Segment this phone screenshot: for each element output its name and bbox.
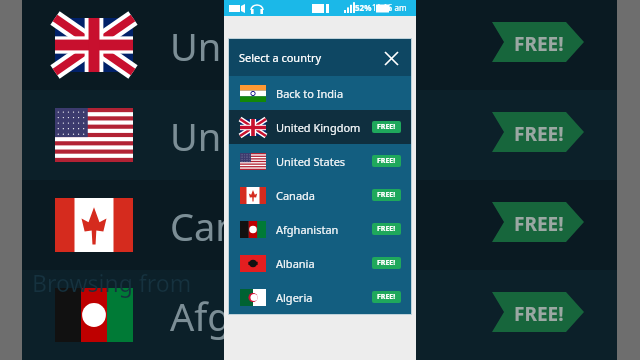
staticText: FREE!: [514, 31, 564, 57]
button[interactable]: United States: [229, 144, 411, 178]
staticText: Uni: [170, 20, 232, 72]
staticText: Browsing from: [32, 267, 192, 298]
staticText: Select a country: [239, 50, 322, 65]
staticText: FREE!: [514, 121, 564, 147]
button[interactable]: Afghanistan: [229, 212, 411, 246]
staticText: Canada: [276, 188, 316, 203]
staticText: Can: [170, 200, 239, 252]
staticText: FREE!: [377, 190, 396, 200]
staticText: FREE!: [377, 122, 396, 132]
staticText: FREE!: [514, 211, 564, 237]
staticText: Uni: [170, 110, 232, 162]
button[interactable]: United Kingdom: [229, 110, 411, 144]
staticText: 11:16 am: [372, 2, 407, 13]
staticText: United States: [276, 154, 346, 169]
staticText: Back to India: [276, 86, 344, 101]
button[interactable]: Canada: [229, 178, 411, 212]
button[interactable]: Close: [379, 46, 403, 70]
staticText: FREE!: [514, 301, 564, 327]
staticText: Algeria: [276, 290, 313, 305]
staticText: 52%: [355, 2, 372, 13]
button[interactable]: Albania: [229, 246, 411, 280]
button[interactable]: Algeria: [229, 280, 411, 314]
button[interactable]: Back to India: [229, 76, 411, 110]
staticText: Afg: [170, 290, 231, 342]
staticText: FREE!: [377, 224, 396, 234]
staticText: Albania: [276, 256, 315, 271]
staticText: FREE!: [377, 258, 396, 268]
staticText: United Kingdom: [276, 120, 361, 135]
staticText: FREE!: [377, 292, 396, 302]
staticText: Afghanistan: [276, 222, 339, 237]
staticText: FREE!: [377, 156, 396, 166]
